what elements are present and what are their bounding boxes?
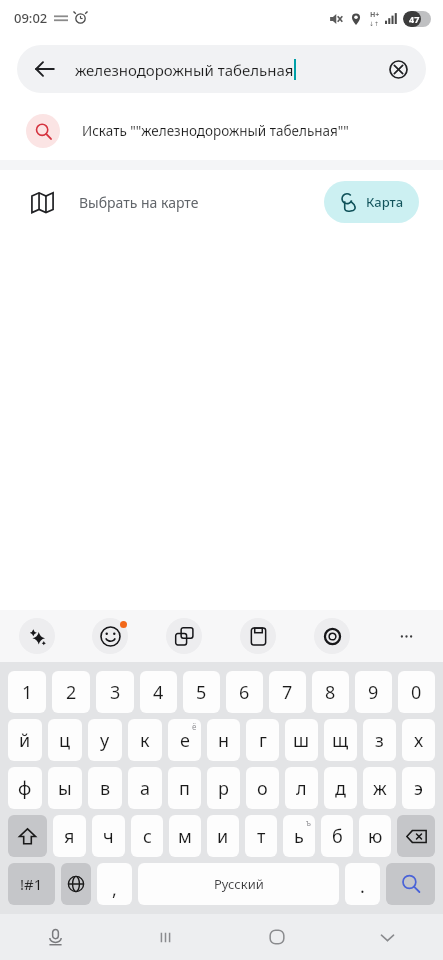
button[interactable]: э <box>402 767 435 809</box>
staticText: б <box>332 824 343 849</box>
button[interactable]: Voice input <box>0 914 110 960</box>
button[interactable]: !#1 <box>8 863 55 905</box>
staticText: м <box>178 824 192 849</box>
staticText: 2 <box>66 680 77 705</box>
button[interactable]: м <box>169 815 201 857</box>
button[interactable]: п <box>168 767 201 809</box>
button[interactable]: т <box>245 815 277 857</box>
staticText: 5 <box>196 680 207 705</box>
button[interactable]: й <box>8 719 42 761</box>
button[interactable]: ч <box>92 815 125 857</box>
staticText: у <box>100 728 110 753</box>
button[interactable]: Выбрать на карте <box>0 170 443 234</box>
staticText: о <box>257 776 268 801</box>
staticText: ё <box>192 721 197 732</box>
button[interactable]: к <box>128 719 162 761</box>
staticText: р <box>218 776 229 801</box>
button[interactable]: 2 <box>52 671 90 713</box>
button[interactable]: ф <box>8 767 42 809</box>
staticText: й <box>19 728 31 753</box>
staticText: 9 <box>368 680 379 705</box>
staticText: 1 <box>22 680 33 705</box>
button[interactable]: ж <box>363 767 396 809</box>
button[interactable]: ю <box>359 815 391 857</box>
button[interactable]: л <box>285 767 318 809</box>
staticText: х <box>414 728 424 753</box>
button[interactable]: Search <box>386 863 435 905</box>
staticText: 6 <box>239 680 250 705</box>
button[interactable]: Back <box>17 45 426 93</box>
button[interactable]: д <box>324 767 357 809</box>
button[interactable]: я <box>53 815 86 857</box>
button[interactable]: ц <box>48 719 82 761</box>
button[interactable]: Shift <box>8 815 47 857</box>
button[interactable]: . <box>345 863 380 905</box>
staticText: з <box>375 728 384 753</box>
button[interactable]: 0 <box>398 671 435 713</box>
staticText: 09:02 <box>14 9 48 27</box>
button[interactable]: у <box>88 719 122 761</box>
button[interactable]: с <box>131 815 163 857</box>
staticText: в <box>100 776 111 801</box>
button[interactable]: Искать ""железнодорожный табельная"" <box>0 102 443 160</box>
staticText: Выбрать на карте <box>79 193 199 212</box>
staticText: Карта <box>366 193 404 211</box>
staticText: к <box>140 728 150 753</box>
button[interactable]: Русский <box>138 863 339 905</box>
button[interactable]: Clipboard <box>240 618 276 654</box>
staticText: ъ <box>306 817 311 828</box>
button[interactable]: р <box>207 767 240 809</box>
button[interactable]: 4 <box>140 671 177 713</box>
button[interactable]: е <box>168 719 201 761</box>
staticText: и <box>217 824 229 849</box>
staticText: Искать ""железнодорожный табельная"" <box>82 122 349 140</box>
staticText: ю <box>368 824 383 849</box>
button[interactable]: 5 <box>183 671 220 713</box>
staticText: ч <box>103 824 114 849</box>
button[interactable]: х <box>402 719 435 761</box>
button[interactable]: з <box>363 719 396 761</box>
staticText: т <box>257 824 266 849</box>
button[interactable]: Карта <box>324 181 419 223</box>
button[interactable]: Home <box>221 914 332 960</box>
button[interactable]: Change language <box>61 863 91 905</box>
staticText: я <box>64 824 75 849</box>
button[interactable]: о <box>246 767 279 809</box>
button[interactable]: More <box>388 618 424 654</box>
button[interactable]: AI <box>19 618 55 654</box>
staticText: 3 <box>110 680 121 705</box>
button[interactable]: н <box>207 719 240 761</box>
button[interactable]: б <box>321 815 353 857</box>
button[interactable]: 9 <box>355 671 392 713</box>
staticText: !#1 <box>20 874 43 894</box>
button[interactable]: 8 <box>312 671 349 713</box>
staticText: э <box>414 776 423 801</box>
staticText: 4 <box>153 680 164 705</box>
button[interactable]: и <box>207 815 239 857</box>
button[interactable]: 7 <box>269 671 306 713</box>
button[interactable]: ы <box>48 767 82 809</box>
button[interactable]: ш <box>285 719 318 761</box>
button[interactable]: Hide keyboard <box>332 914 443 960</box>
button[interactable]: 6 <box>226 671 263 713</box>
button[interactable]: Back <box>23 47 67 91</box>
button[interactable]: Settings <box>314 618 350 654</box>
staticText: ш <box>293 728 310 753</box>
staticText: п <box>179 776 190 801</box>
button[interactable]: в <box>88 767 122 809</box>
button[interactable]: Translate <box>166 618 202 654</box>
staticText: а <box>140 776 151 801</box>
button[interactable]: Clear <box>378 49 418 89</box>
button[interactable]: Recents <box>110 914 221 960</box>
button[interactable]: щ <box>324 719 357 761</box>
staticText: 47 <box>409 13 420 25</box>
button[interactable]: 3 <box>96 671 134 713</box>
button[interactable]: 1 <box>8 671 46 713</box>
button[interactable]: , <box>97 863 132 905</box>
button[interactable]: г <box>246 719 279 761</box>
staticText: 8 <box>325 680 336 705</box>
button[interactable]: а <box>128 767 162 809</box>
button[interactable]: Backspace <box>397 815 435 857</box>
button[interactable]: ь <box>283 815 315 857</box>
button[interactable]: Emoji <box>92 618 128 654</box>
